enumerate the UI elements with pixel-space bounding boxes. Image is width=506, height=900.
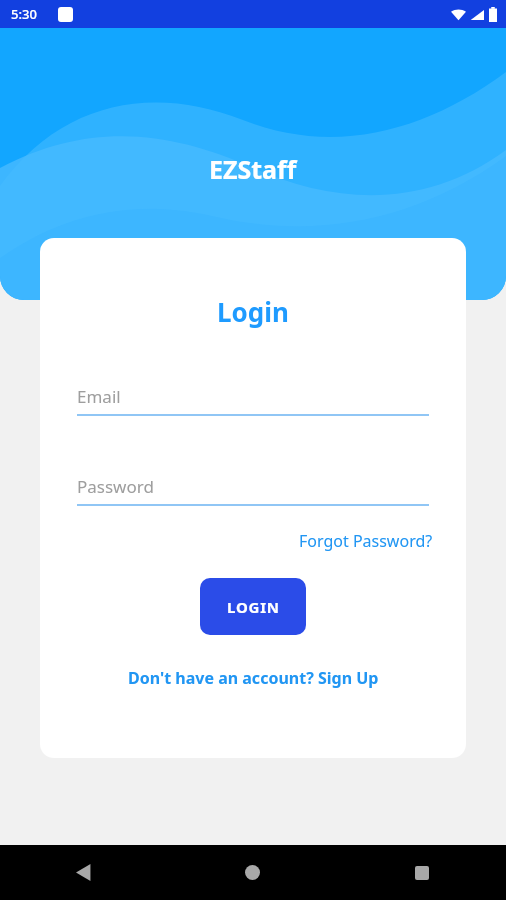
staticText: EZStaff [209,152,297,186]
button[interactable]: Password [77,475,429,506]
button[interactable]: LOGIN [200,578,306,635]
button[interactable]: Recent apps [337,845,506,900]
button[interactable]: Home [168,845,337,900]
button[interactable]: Email [77,385,429,416]
staticText: Don't have an account? Sign Up [128,667,379,689]
button[interactable]: Forgot Password? [297,526,435,556]
staticText: Forgot Password? [299,530,433,552]
button[interactable]: Don't have an account? Sign Up [124,663,383,693]
staticText: Email [77,385,121,408]
button[interactable]: Back [0,845,168,900]
staticText: LOGIN [227,597,280,617]
staticText: Login [40,294,466,329]
staticText: Password [77,475,154,498]
staticText: 5:30 [11,5,37,23]
